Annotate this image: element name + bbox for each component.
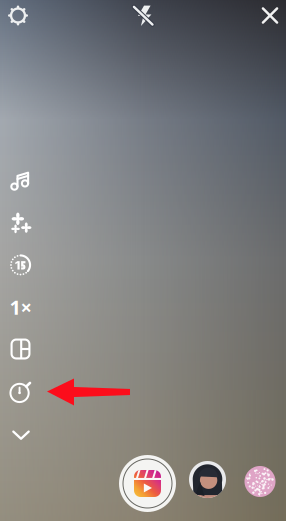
- button[interactable]: Flash off: [125, 0, 161, 33]
- button[interactable]: Layout: [5, 334, 35, 364]
- button[interactable]: Camera settings: [0, 0, 36, 33]
- button[interactable]: Speed, 1x: [5, 292, 35, 322]
- button[interactable]: Effects: [6, 208, 36, 238]
- button[interactable]: Glitter effect: [242, 463, 278, 499]
- staticText: 1×: [9, 294, 31, 320]
- button[interactable]: Open gallery: [187, 459, 227, 499]
- button[interactable]: More options: [6, 420, 36, 450]
- button[interactable]: Close camera: [252, 0, 286, 33]
- button[interactable]: Add audio: [4, 166, 34, 196]
- button[interactable]: Length, 15 seconds: [5, 250, 35, 280]
- button[interactable]: Timer: [5, 377, 35, 407]
- button[interactable]: Record reel: [117, 453, 177, 513]
